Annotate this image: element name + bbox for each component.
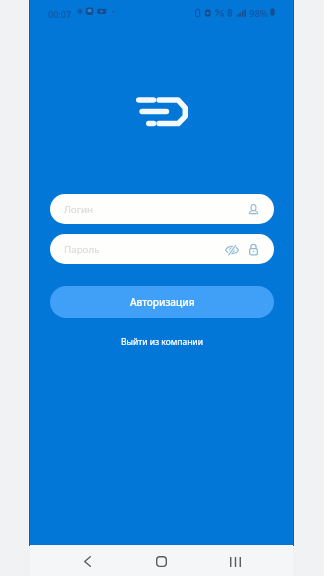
button[interactable]: Home [145,545,177,576]
staticText: 00:07 [48,8,72,20]
other: Lock [249,244,258,255]
button[interactable]: Recent apps [219,545,251,576]
staticText: Пароль [64,243,100,256]
other: Show password [225,244,239,255]
staticText: Логин [64,203,94,216]
button[interactable]: Логин [50,194,274,224]
button[interactable]: Выйти из компании [117,332,207,352]
staticText: Авторизация [130,295,195,309]
button[interactable]: Back [71,545,103,576]
button[interactable]: Авторизация [50,286,274,318]
button[interactable]: Пароль [50,234,274,264]
staticText: Выйти из компании [121,336,203,348]
other: User [249,204,258,214]
staticText: 98% [249,7,268,20]
